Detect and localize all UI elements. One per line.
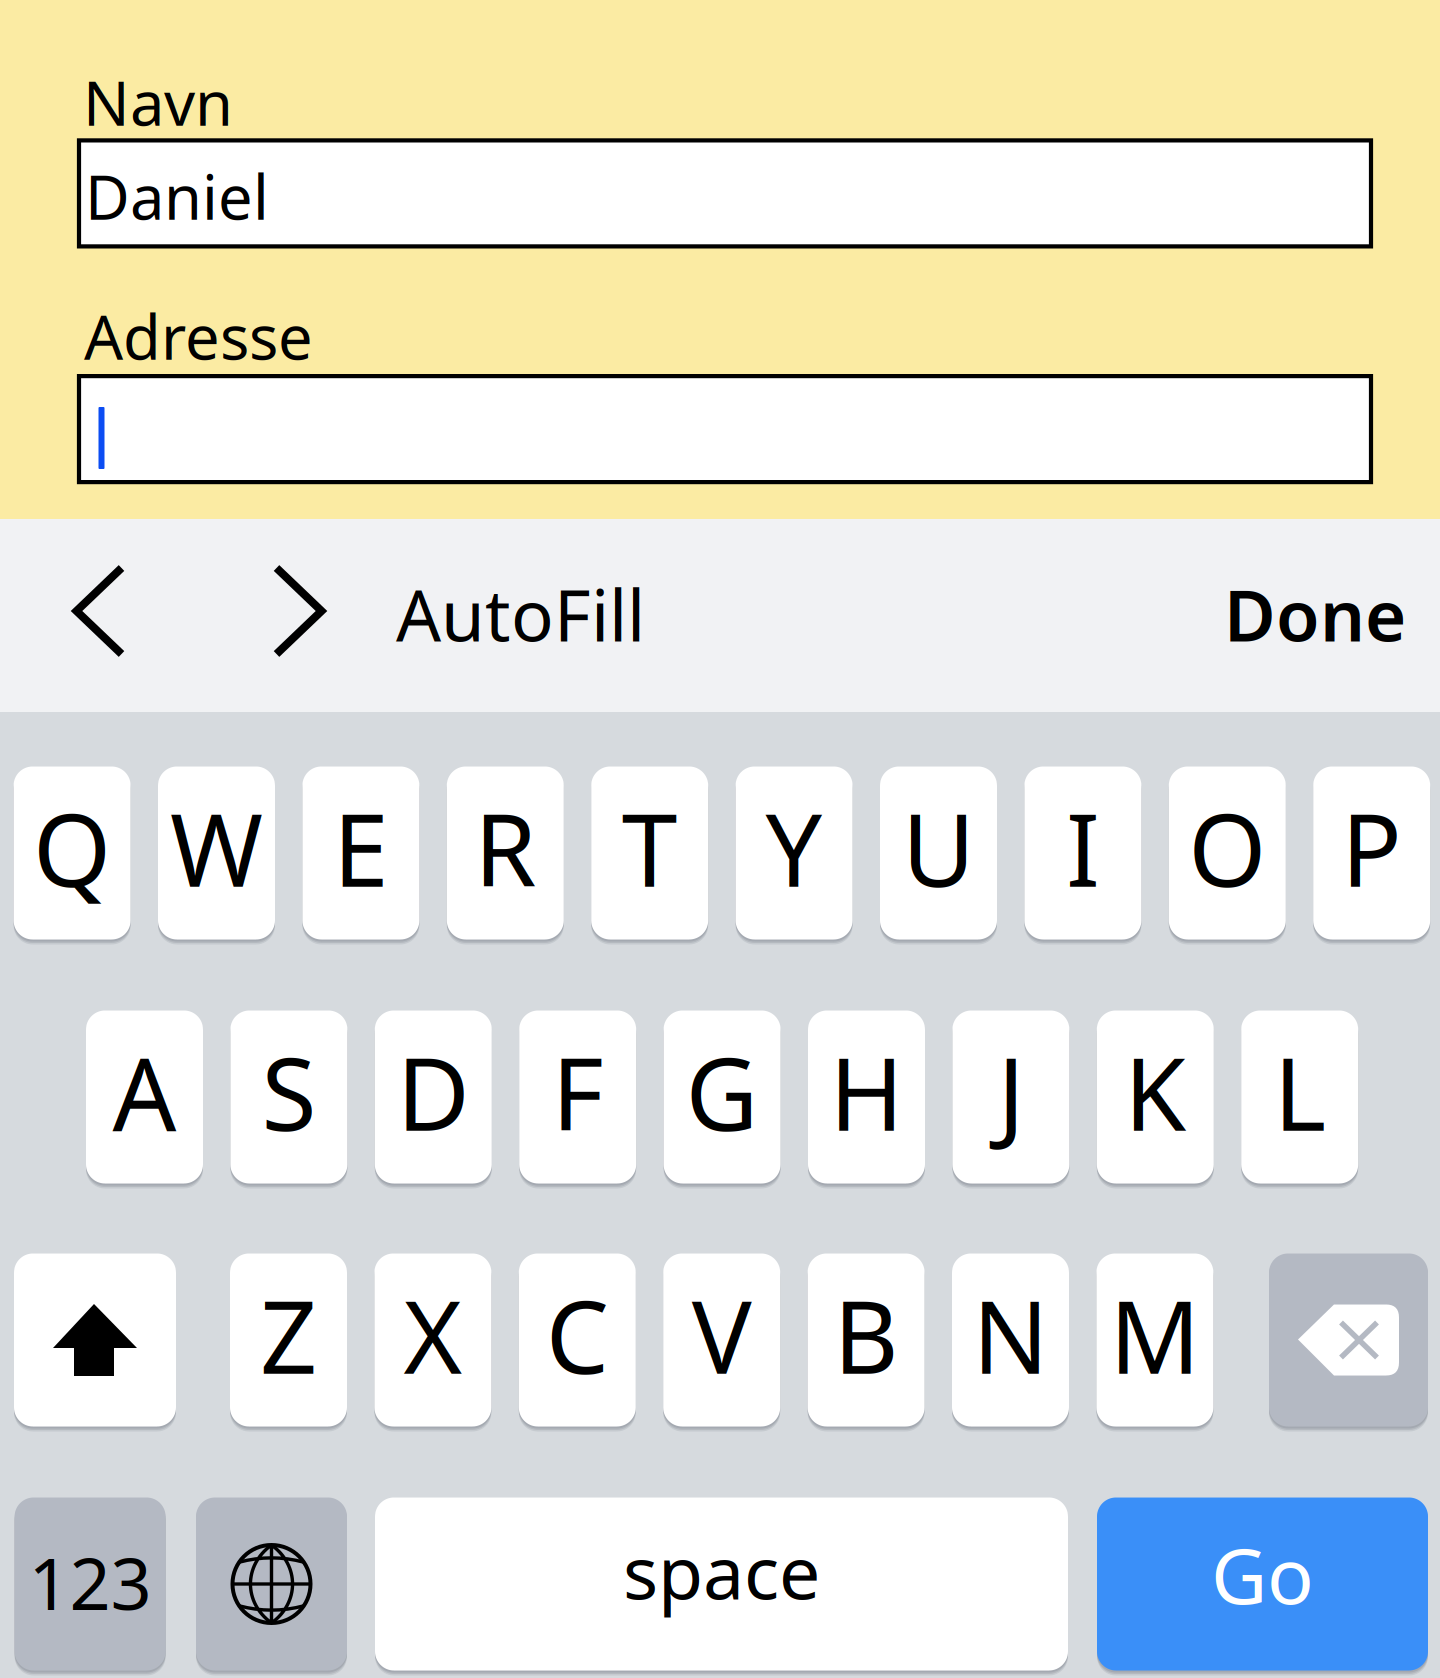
staticText: T <box>622 782 678 914</box>
button[interactable]: W <box>158 764 275 942</box>
button[interactable]: C <box>519 1251 636 1429</box>
staticText: I <box>1066 782 1100 914</box>
staticText: Navn <box>83 61 233 143</box>
staticText: Daniel <box>85 155 269 237</box>
button[interactable]: Delete <box>1269 1251 1428 1429</box>
button[interactable]: R <box>447 764 564 942</box>
staticText: Q <box>33 782 111 914</box>
staticText: D <box>397 1026 470 1158</box>
button[interactable]: I <box>1024 764 1141 942</box>
staticText: Z <box>260 1269 317 1401</box>
staticText: U <box>902 782 975 914</box>
staticText: K <box>1124 1026 1186 1158</box>
button[interactable]: B <box>808 1251 925 1429</box>
button[interactable]: G <box>664 1008 781 1186</box>
button[interactable]: space <box>375 1495 1068 1673</box>
staticText: AutoFill <box>396 567 645 661</box>
staticText: M <box>1109 1269 1200 1401</box>
staticText: 123 <box>29 1534 152 1630</box>
button[interactable]: AutoFill <box>396 544 656 684</box>
staticText: Adresse <box>84 295 313 377</box>
button[interactable]: E <box>302 764 419 942</box>
staticText: Y <box>766 782 823 914</box>
button[interactable]: S <box>230 1008 347 1186</box>
button[interactable]: Y <box>736 764 853 942</box>
staticText: O <box>1188 782 1266 914</box>
button[interactable]: K <box>1097 1008 1214 1186</box>
button[interactable]: P <box>1313 764 1430 942</box>
staticText: C <box>546 1269 609 1401</box>
button[interactable]: M <box>1096 1251 1213 1429</box>
button[interactable]: Shift <box>14 1251 176 1429</box>
staticText: P <box>1341 782 1402 914</box>
staticText: Go <box>1211 1523 1314 1625</box>
staticText: B <box>834 1269 899 1401</box>
button[interactable]: Z <box>230 1251 347 1429</box>
staticText: V <box>692 1269 752 1401</box>
staticText: space <box>623 1522 820 1620</box>
button[interactable]: J <box>952 1008 1069 1186</box>
staticText: S <box>261 1026 316 1158</box>
button[interactable]: V <box>663 1251 780 1429</box>
staticText: F <box>552 1026 604 1158</box>
staticText: W <box>170 782 263 914</box>
staticText: G <box>686 1026 759 1158</box>
button[interactable]: T <box>591 764 708 942</box>
staticText: E <box>333 782 389 914</box>
button[interactable]: D <box>375 1008 492 1186</box>
staticText: H <box>829 1026 903 1158</box>
staticText: X <box>403 1269 462 1401</box>
staticText: Done <box>1224 567 1406 661</box>
button[interactable]: Q <box>14 764 131 942</box>
button[interactable]: U <box>880 764 997 942</box>
button[interactable]: Done <box>1126 544 1406 684</box>
staticText: N <box>972 1269 1048 1401</box>
button[interactable]: O <box>1169 764 1286 942</box>
button[interactable]: X <box>374 1251 491 1429</box>
button[interactable]: Previous field <box>34 541 164 681</box>
button[interactable]: N <box>952 1251 1069 1429</box>
button[interactable]: F <box>519 1008 636 1186</box>
button[interactable]: Go <box>1097 1495 1428 1673</box>
button[interactable]: H <box>808 1008 925 1186</box>
staticText: J <box>997 1026 1024 1158</box>
staticText: A <box>112 1026 176 1158</box>
button[interactable]: A <box>86 1008 203 1186</box>
staticText: L <box>1274 1026 1326 1158</box>
button[interactable]: 123 <box>15 1495 166 1673</box>
staticText: R <box>474 782 536 914</box>
button[interactable]: L <box>1241 1008 1358 1186</box>
button[interactable]: Next keyboard <box>196 1495 347 1673</box>
button[interactable]: Next field <box>234 541 364 681</box>
